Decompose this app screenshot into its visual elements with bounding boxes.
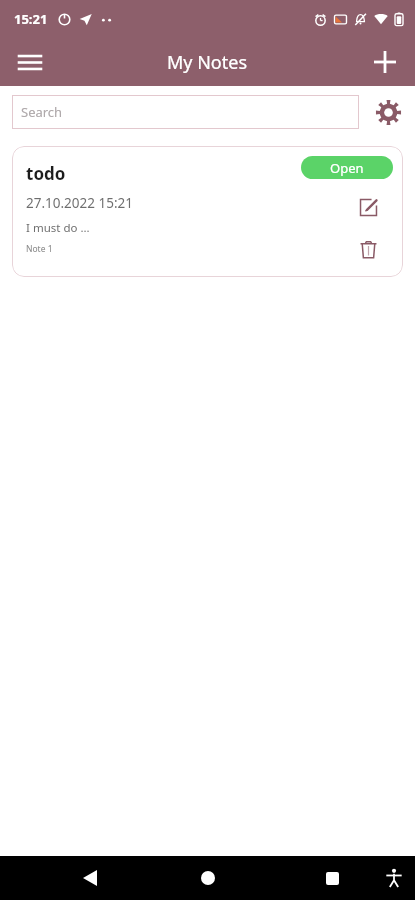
staticText: 15:21 xyxy=(14,10,48,28)
button[interactable]: Home xyxy=(178,856,238,900)
button[interactable]: Search xyxy=(12,95,359,129)
staticText: My Notes xyxy=(167,50,248,75)
button[interactable]: Accessibility xyxy=(373,856,415,900)
button[interactable]: Menu xyxy=(9,41,51,83)
button[interactable]: Settings xyxy=(371,95,405,129)
staticText: Note 1 xyxy=(26,243,53,255)
staticText: 27.10.2022 15:21 xyxy=(26,194,134,212)
button[interactable]: todo xyxy=(12,146,403,277)
button[interactable]: Delete note xyxy=(355,236,381,262)
button[interactable]: Recent apps xyxy=(302,856,362,900)
staticText: Search xyxy=(21,103,63,121)
button[interactable]: Edit note xyxy=(355,194,381,220)
button[interactable]: Back xyxy=(60,856,120,900)
button[interactable]: Open xyxy=(301,156,393,179)
staticText: Open xyxy=(330,159,364,177)
staticText: I must do ... xyxy=(26,220,90,236)
staticText: todo xyxy=(26,162,66,185)
button[interactable]: Add note xyxy=(364,41,406,83)
